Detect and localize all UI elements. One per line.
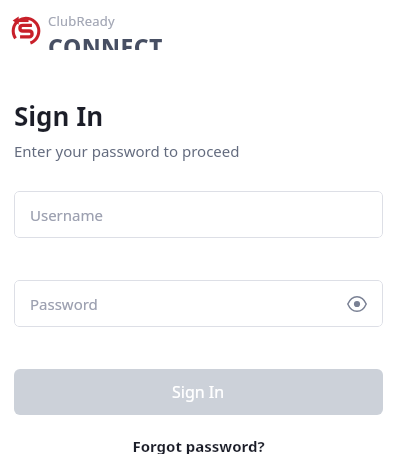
button[interactable]: Forgot password? bbox=[0, 430, 397, 460]
other: ClubReady logo bbox=[10, 15, 42, 47]
staticText: Sign In bbox=[14, 98, 104, 133]
button[interactable]: Show password bbox=[343, 290, 371, 318]
staticText: ClubReady bbox=[48, 12, 115, 30]
staticText: Password bbox=[30, 294, 98, 314]
button[interactable]: Username bbox=[14, 191, 383, 238]
button[interactable]: Password bbox=[14, 280, 383, 327]
staticText: CONNECT bbox=[48, 31, 164, 50]
staticText: Sign In bbox=[172, 381, 225, 403]
button[interactable]: Sign In bbox=[14, 369, 383, 415]
staticText: Enter your password to proceed bbox=[14, 141, 240, 161]
staticText: Forgot password? bbox=[132, 436, 265, 454]
staticText: Username bbox=[30, 205, 103, 225]
